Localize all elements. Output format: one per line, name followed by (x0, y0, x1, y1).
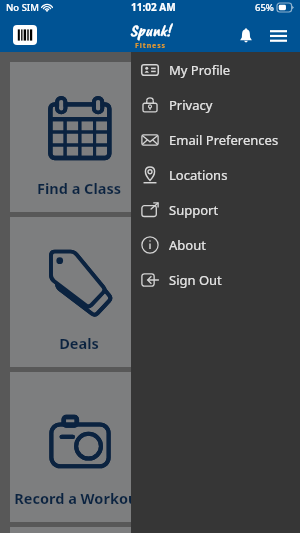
staticText: 11:02 AM (131, 0, 176, 14)
button[interactable]: Privacy (131, 87, 300, 122)
staticText: Privacy (169, 96, 213, 114)
staticText: My Profile (169, 61, 231, 79)
button[interactable]: Support (131, 192, 300, 227)
button[interactable]: Find a Class (10, 62, 148, 212)
button[interactable]: Class Schedule (152, 62, 290, 212)
staticText: Locations (169, 166, 228, 184)
button[interactable]: Deals (10, 217, 148, 367)
staticText: Spunk! (130, 20, 171, 41)
button[interactable]: Record a Workout (10, 372, 148, 522)
staticText: Support (169, 201, 219, 219)
staticText: Sign Out (169, 271, 222, 289)
staticText: About (169, 236, 206, 254)
staticText: Class Schedule (168, 178, 274, 198)
staticText: No SIM (6, 1, 39, 14)
button[interactable]: Sign Out (131, 262, 300, 297)
staticText: Find a Class (37, 178, 121, 198)
staticText: Email Preferences (169, 131, 279, 149)
button[interactable]: Locations (131, 157, 300, 192)
staticText: Deals (59, 333, 99, 353)
button[interactable]: Notifications (232, 22, 260, 50)
staticText: 65% (255, 1, 274, 14)
button[interactable]: Email Preferences (131, 122, 300, 157)
staticText: Record a Workout (14, 488, 144, 508)
staticText: Fitness (135, 41, 167, 51)
button[interactable]: Open navigation menu (264, 22, 292, 50)
button[interactable]: About (131, 227, 300, 262)
button[interactable]: Scan member barcode (13, 25, 37, 45)
button[interactable]: More (10, 527, 148, 533)
button[interactable]: My Profile (131, 52, 300, 87)
button[interactable]: Offers (152, 217, 290, 367)
